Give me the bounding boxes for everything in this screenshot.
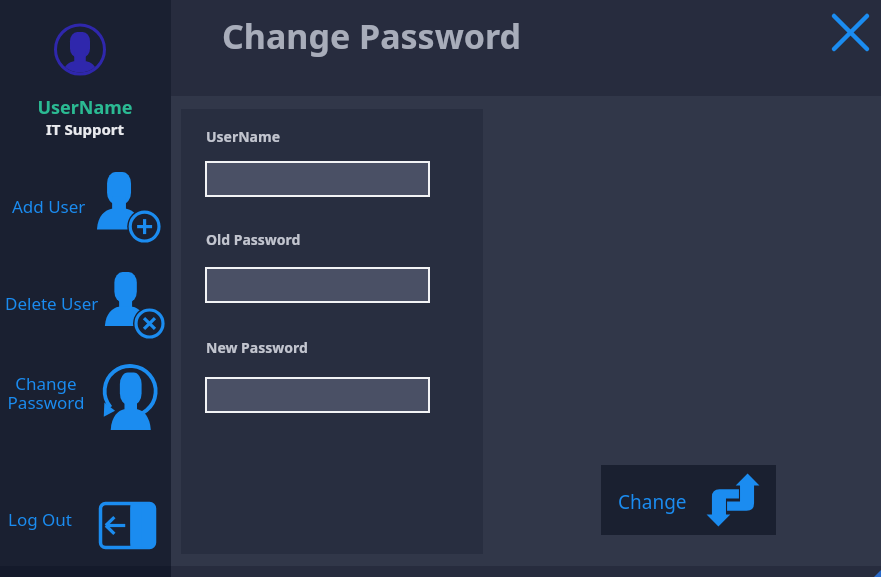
button[interactable] (205, 377, 430, 413)
staticText: UserName (0, 95, 170, 120)
staticText: UserName (206, 127, 281, 146)
staticText: New Password (206, 338, 308, 357)
staticText: Old Password (206, 230, 301, 249)
button[interactable] (205, 267, 430, 303)
button[interactable]: Change (0, 360, 170, 432)
staticText: Password (0, 391, 92, 414)
button[interactable]: Log Out (0, 496, 170, 556)
staticText: Change Password (222, 13, 521, 59)
staticText: Log Out (8, 508, 72, 531)
button[interactable]: Delete User (0, 268, 170, 340)
button[interactable] (205, 161, 430, 197)
staticText: Delete User (5, 292, 99, 315)
staticText: Add User (12, 195, 86, 218)
button[interactable]: Add User (0, 166, 170, 250)
button[interactable] (826, 8, 874, 56)
staticText: Change (618, 489, 687, 515)
staticText: IT Support (0, 119, 170, 139)
staticText: Change (0, 372, 92, 395)
button[interactable]: Change (601, 465, 776, 535)
